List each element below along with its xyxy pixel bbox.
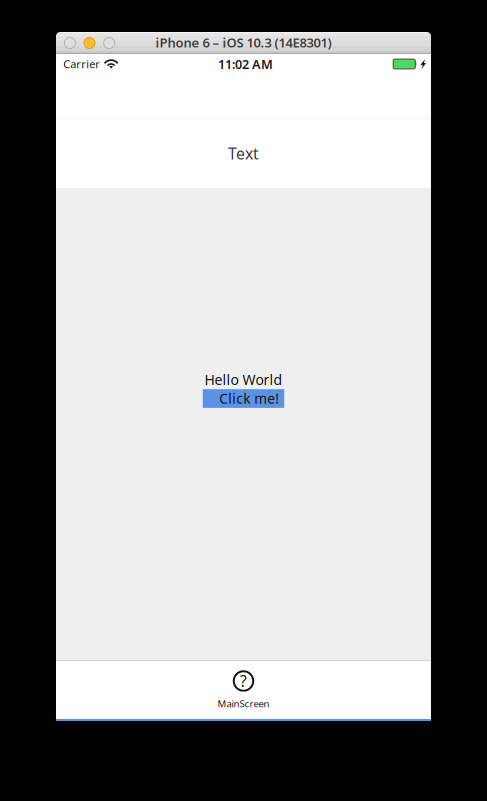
staticText: 11:02 AM xyxy=(218,55,273,73)
staticText: iPhone 6 – iOS 10.3 (14E8301) xyxy=(155,34,331,51)
button[interactable]: Minimize window xyxy=(84,37,95,48)
staticText: Hello World xyxy=(204,370,282,389)
staticText: Click me! xyxy=(219,389,279,408)
button[interactable]: Zoom window xyxy=(104,37,115,48)
staticText: Carrier xyxy=(63,56,100,71)
button[interactable]: Close window xyxy=(64,37,75,48)
button[interactable]: ? xyxy=(56,661,431,719)
button[interactable]: Click me! xyxy=(203,389,284,408)
staticText: MainScreen xyxy=(217,697,269,710)
staticText: ? xyxy=(240,671,247,691)
staticText: Text xyxy=(228,143,259,164)
